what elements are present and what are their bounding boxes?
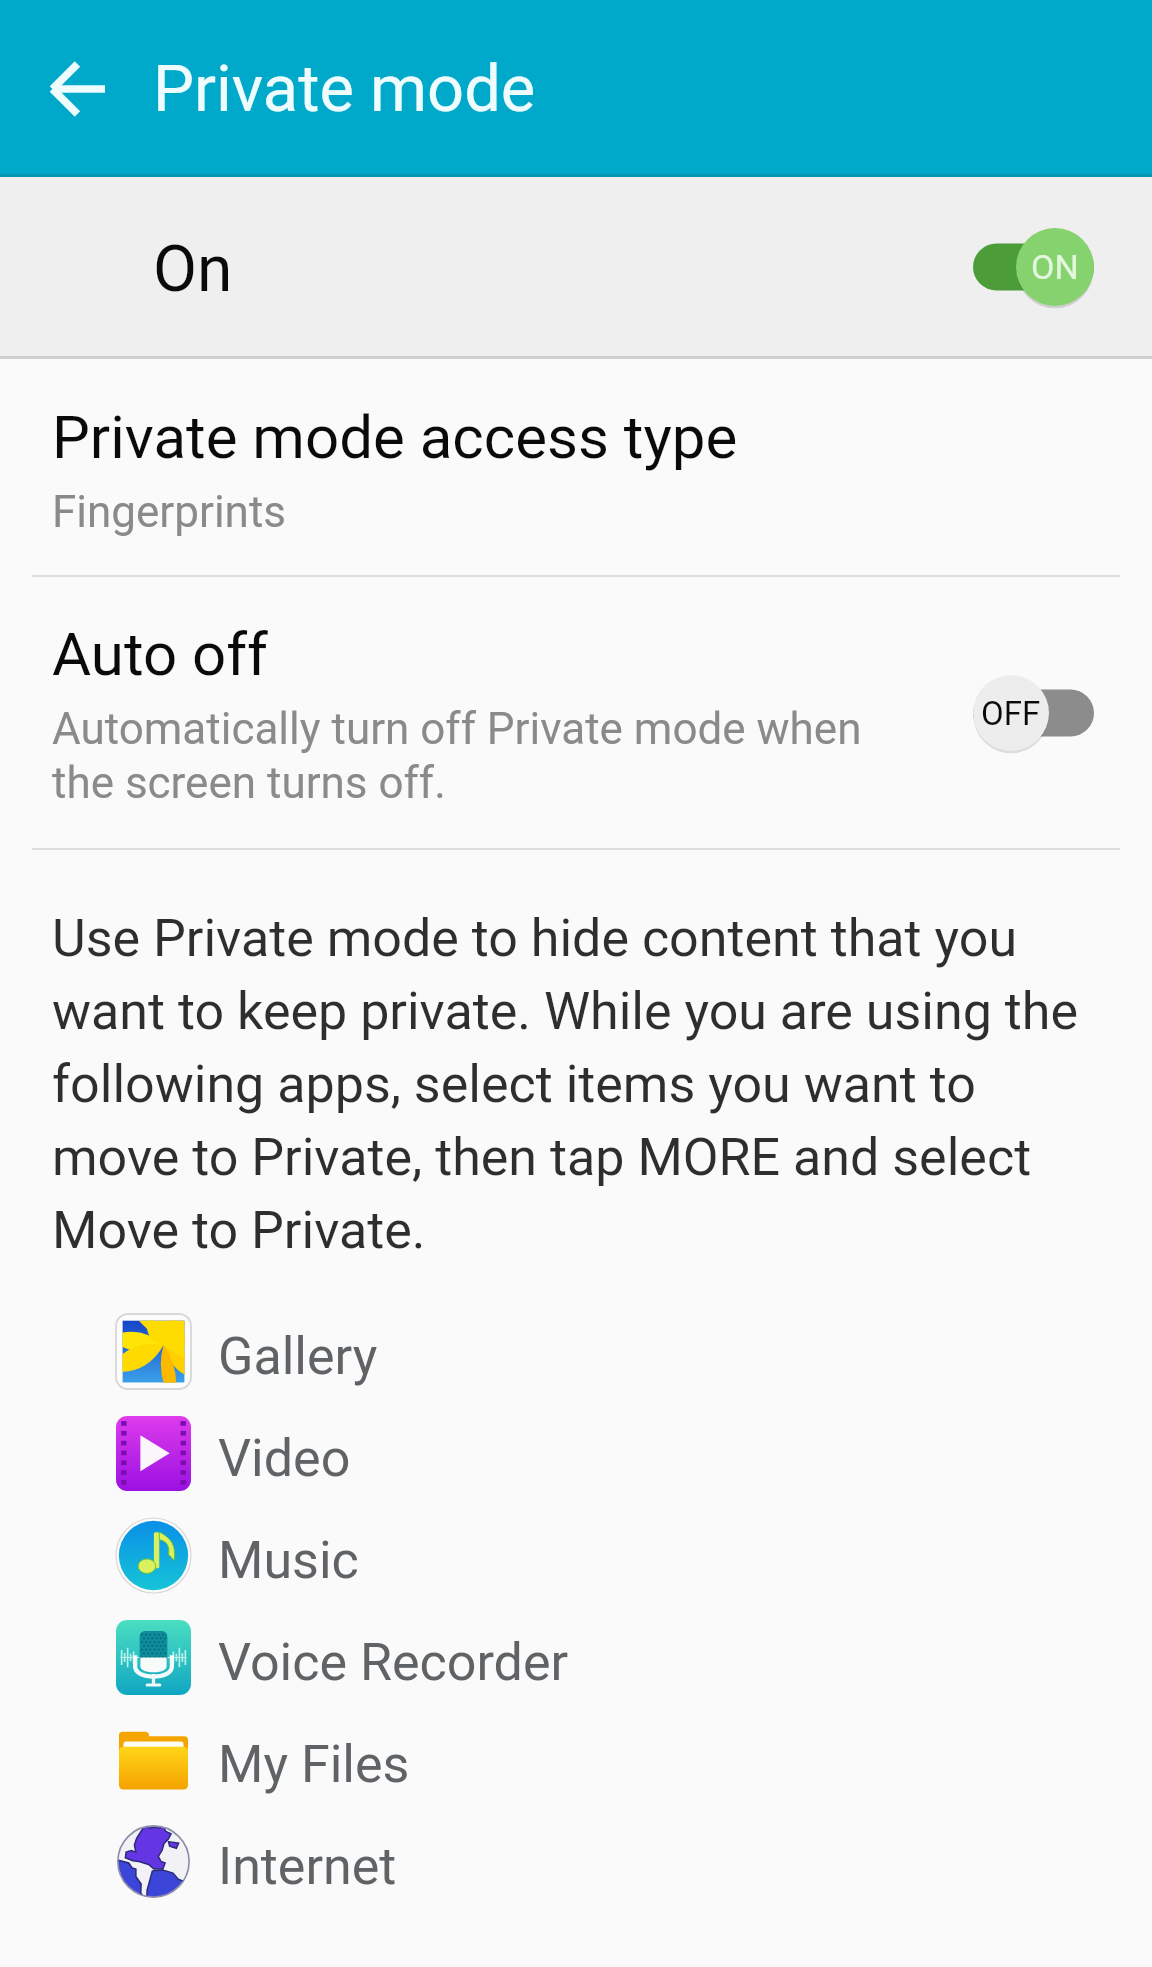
staticText: On — [153, 232, 233, 307]
button[interactable]: Gallery — [0, 1300, 1152, 1402]
button[interactable]: Private mode access type — [0, 359, 1152, 575]
staticText: ON — [1031, 247, 1079, 287]
button[interactable]: Music — [0, 1504, 1152, 1606]
button[interactable]: Internet — [0, 1810, 1152, 1912]
button[interactable]: On — [0, 177, 1152, 356]
staticText: Internet — [218, 1836, 397, 1897]
staticText: OFF — [981, 694, 1041, 733]
staticText: Gallery — [218, 1326, 378, 1387]
button[interactable]: Video — [0, 1402, 1152, 1504]
staticText: Private mode — [153, 51, 536, 127]
button[interactable]: Voice Recorder — [0, 1606, 1152, 1708]
button[interactable]: Navigate back — [31, 43, 123, 135]
button[interactable]: My Files — [0, 1708, 1152, 1810]
staticText: Automatically turn off Private mode when… — [52, 703, 873, 808]
staticText: Voice Recorder — [218, 1632, 569, 1693]
staticText: Music — [218, 1530, 359, 1591]
staticText: Use Private mode to hide content that yo… — [52, 908, 1078, 1260]
staticText: Private mode access type — [52, 402, 738, 472]
button[interactable]: Off — [973, 672, 1094, 754]
staticText: My Files — [218, 1734, 410, 1795]
staticText: Video — [218, 1428, 351, 1489]
staticText: Auto off — [52, 619, 268, 689]
button[interactable]: Auto off — [0, 577, 1152, 848]
button[interactable]: On — [973, 226, 1094, 308]
staticText: Fingerprints — [52, 486, 286, 538]
